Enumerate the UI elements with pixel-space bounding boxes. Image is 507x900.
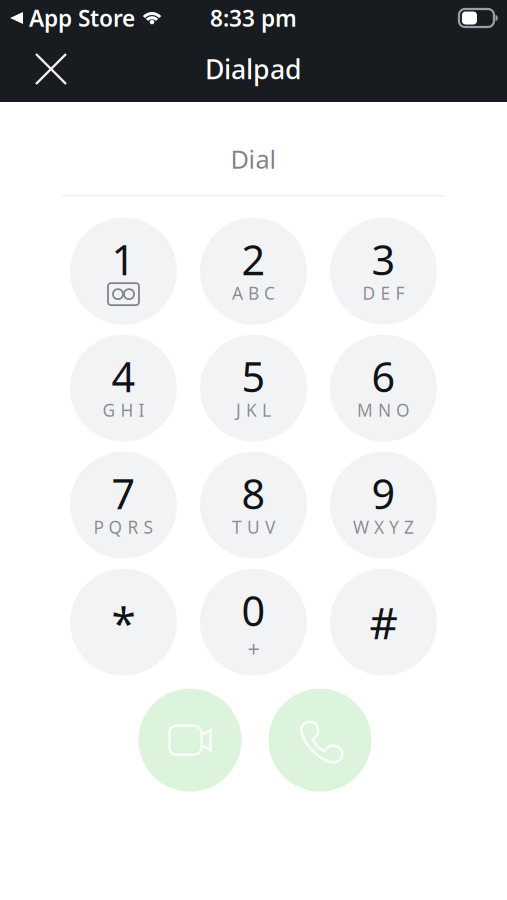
staticText: Dialpad [205, 51, 302, 87]
button[interactable]: 5 [200, 335, 307, 442]
button[interactable]: Close [0, 37, 92, 101]
staticText: # [369, 593, 397, 651]
staticText: * [111, 593, 135, 651]
staticText: 2 [241, 232, 265, 287]
staticText: 8:33 pm [210, 3, 297, 33]
button[interactable]: 4 [70, 335, 177, 442]
button[interactable]: 8 [200, 452, 307, 559]
button[interactable]: 0 [200, 569, 307, 676]
staticText: 7 [111, 466, 135, 521]
button[interactable]: # [330, 569, 437, 676]
staticText: + [247, 634, 259, 662]
staticText: T U V [232, 516, 275, 539]
staticText: G H I [102, 399, 144, 422]
staticText: 6 [371, 349, 395, 404]
staticText: 1 [111, 232, 135, 287]
button[interactable]: 6 [330, 335, 437, 442]
staticText: 4 [111, 349, 135, 404]
button[interactable]: Call [268, 689, 371, 792]
button[interactable]: * [70, 569, 177, 676]
staticText: W X Y Z [353, 516, 414, 539]
staticText: 5 [241, 349, 265, 404]
staticText: Dial [230, 142, 276, 176]
button[interactable]: 2 [200, 218, 307, 325]
staticText: 9 [371, 466, 395, 521]
staticText: D E F [362, 282, 404, 305]
staticText: 3 [371, 232, 395, 287]
staticText: 0 [241, 583, 265, 638]
staticText: M N O [357, 399, 410, 422]
button[interactable]: 1 [70, 218, 177, 325]
staticText: J K L [236, 399, 271, 422]
staticText: 8 [241, 466, 265, 521]
staticText: App Store [29, 3, 135, 33]
staticText: A B C [232, 282, 275, 305]
button[interactable]: 9 [330, 452, 437, 559]
button[interactable]: Video call [138, 689, 241, 792]
button[interactable]: 7 [70, 452, 177, 559]
staticText: P Q R S [93, 516, 153, 539]
button[interactable]: 3 [330, 218, 437, 325]
